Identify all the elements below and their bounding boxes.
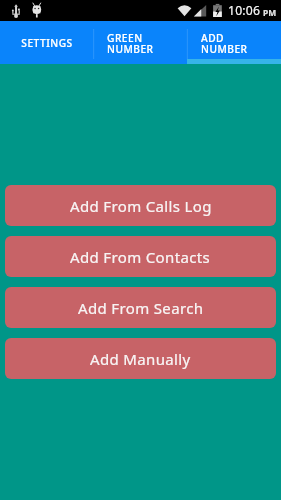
staticText: Add From Contacts <box>70 247 211 267</box>
staticText: 10:06 <box>228 2 261 19</box>
button[interactable]: SETTINGS <box>0 21 93 59</box>
button[interactable]: Add From Calls Log <box>5 185 276 226</box>
button[interactable]: GREEN NUMBER <box>93 21 187 59</box>
button[interactable]: Add Manually <box>5 338 276 379</box>
button[interactable]: Add From Contacts <box>5 236 276 277</box>
staticText: SETTINGS <box>14 36 80 50</box>
button[interactable]: ADD NUMBER <box>187 21 281 59</box>
staticText: ADD NUMBER <box>201 31 268 56</box>
staticText: Add From Calls Log <box>70 196 212 216</box>
staticText: GREEN NUMBER <box>107 31 174 56</box>
staticText: PM <box>263 7 277 18</box>
staticText: Add From Search <box>78 298 204 318</box>
button[interactable]: Add From Search <box>5 287 276 328</box>
staticText: Add Manually <box>90 349 191 369</box>
